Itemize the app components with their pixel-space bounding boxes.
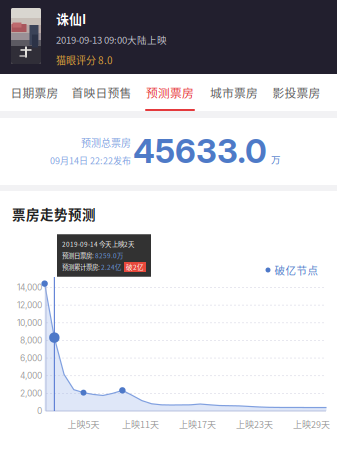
- staticText: 预测总票房: [81, 135, 131, 150]
- staticText: 上映11天: [122, 417, 159, 430]
- staticText: 上映23天: [236, 417, 273, 430]
- staticText: 8259.0万: [95, 251, 123, 260]
- staticText: 万: [271, 152, 281, 166]
- staticText: 45633.0: [133, 131, 267, 171]
- staticText: 2019-09-14 今天 上映2天: [62, 239, 134, 249]
- staticText: 破亿节点: [274, 262, 318, 278]
- staticText: 上映29天: [293, 417, 330, 430]
- staticText: 预测日票房:: [62, 251, 95, 260]
- button[interactable]: 城市票房: [204, 74, 264, 111]
- button[interactable]: 预测票房: [140, 74, 200, 111]
- staticText: 4,000: [20, 371, 42, 381]
- staticText: 上映5天: [67, 417, 99, 430]
- staticText: 09月14日 22:22发布: [50, 154, 131, 167]
- staticText: 影投票房: [272, 84, 320, 101]
- staticText: 0: [37, 406, 42, 416]
- staticText: 2019-09-13 09:00大陆上映: [56, 33, 167, 47]
- staticText: 票房走势预测: [12, 204, 96, 223]
- staticText: 上映17天: [179, 417, 216, 430]
- staticText: 日期票房: [10, 84, 58, 101]
- staticText: 10,000: [17, 318, 42, 328]
- staticText: 8,000: [20, 335, 42, 346]
- staticText: 14,000: [17, 282, 42, 293]
- staticText: 2,000: [20, 388, 42, 398]
- staticText: 诛仙I: [56, 9, 86, 28]
- staticText: 12,000: [17, 300, 42, 310]
- staticText: 城市票房: [210, 84, 258, 101]
- staticText: 2.24亿: [101, 262, 121, 272]
- staticText: 首映日预售: [71, 84, 131, 101]
- staticText: 6,000: [20, 353, 42, 363]
- staticText: 猫眼评分 8.0: [56, 53, 113, 67]
- button[interactable]: 影投票房: [266, 74, 326, 111]
- button[interactable]: 日期票房: [5, 74, 63, 111]
- staticText: 破2亿: [126, 262, 144, 272]
- button[interactable]: 首映日预售: [66, 74, 136, 111]
- staticText: 预测累计票房:: [62, 262, 101, 272]
- staticText: 预测票房: [146, 84, 194, 101]
